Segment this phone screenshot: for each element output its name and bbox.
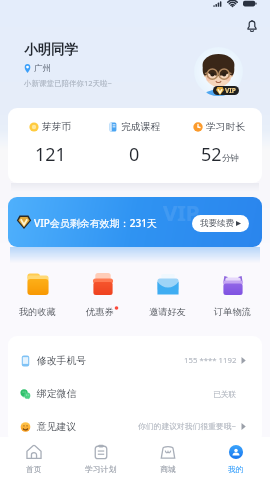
staticText: 学习计划 <box>85 464 117 474</box>
staticText: 订单物流 <box>214 306 251 318</box>
staticText: 首页 <box>26 464 42 474</box>
staticText: VIP <box>163 197 200 227</box>
staticText: 意见建议 <box>37 421 77 433</box>
staticText: 学习时长 <box>206 121 246 133</box>
button[interactable]: 完成课程 <box>92 108 177 183</box>
button[interactable]: 修改手机号 <box>8 344 262 377</box>
button[interactable]: 芽芽币 <box>8 108 92 183</box>
staticText: 你们的建议对我们很重要哦~ <box>138 421 237 432</box>
button[interactable]: 我要续费 <box>192 215 249 232</box>
button[interactable]: 绑定微信 <box>8 377 262 410</box>
staticText: 我的收藏 <box>19 306 56 318</box>
staticText: 完成课程 <box>121 121 161 133</box>
button[interactable]: VIP <box>8 197 262 247</box>
staticText: 我要续费 <box>200 218 234 229</box>
staticText: 优惠券 <box>86 306 114 318</box>
staticText: 0 <box>129 142 140 167</box>
staticText: 修改手机号 <box>37 355 86 367</box>
staticText: VIP <box>225 86 236 95</box>
staticText: 绑定微信 <box>37 388 77 400</box>
staticText: 我的 <box>228 464 244 474</box>
staticText: 52 <box>201 142 222 167</box>
button[interactable]: 头像 <box>194 47 243 96</box>
staticText: 已关联 <box>213 389 237 399</box>
staticText: 商城 <box>160 464 176 474</box>
button[interactable]: 邀请好友 <box>135 272 200 318</box>
staticText: 121 <box>35 142 66 167</box>
button[interactable]: 我的收藏 <box>5 272 70 318</box>
button[interactable]: 优惠券 <box>70 272 135 318</box>
button[interactable]: 通知 <box>243 14 260 36</box>
staticText: 广州 <box>34 63 51 74</box>
button[interactable]: 首页 <box>0 437 67 480</box>
button[interactable]: 意见建议 <box>8 410 262 443</box>
staticText: 小明同学 <box>24 41 78 58</box>
staticText: 邀请好友 <box>149 306 186 318</box>
button[interactable]: 订单物流 <box>200 272 265 318</box>
staticText: 155 **** 1192 <box>184 355 237 366</box>
button[interactable]: 学习时长 <box>177 108 262 183</box>
staticText: 小新课堂已陪伴你12天啦~ <box>24 78 112 88</box>
button[interactable]: 商城 <box>134 437 202 480</box>
button[interactable]: 我的 <box>202 437 270 480</box>
staticText: 芽芽币 <box>42 121 72 133</box>
staticText: 分钟 <box>222 153 239 164</box>
button[interactable]: 学习计划 <box>67 437 134 480</box>
staticText: VIP会员剩余有效期：231天 <box>34 216 157 230</box>
